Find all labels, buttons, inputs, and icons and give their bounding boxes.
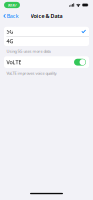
staticText: 4G — [6, 38, 13, 45]
button[interactable]: Back — [0, 10, 21, 21]
staticText: VoLTE improves voice quality. — [6, 71, 57, 76]
staticText: Voice & Data — [30, 12, 62, 20]
staticText: 5G — [6, 28, 13, 35]
button[interactable]: 4G — [4, 37, 89, 46]
staticText: VoLTE — [6, 59, 21, 66]
staticText: 00:47 — [7, 2, 16, 8]
staticText: Back — [7, 12, 19, 20]
staticText: Using 5G uses more data. — [6, 49, 51, 54]
button[interactable]: VoLTE — [4, 56, 89, 68]
button[interactable]: 5G — [4, 27, 89, 36]
